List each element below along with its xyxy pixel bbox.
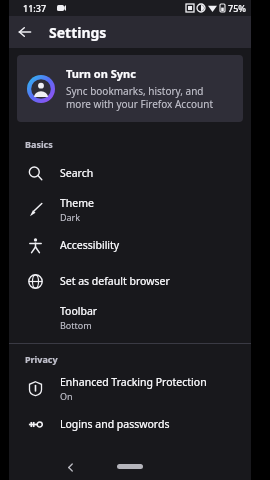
staticText: 75% bbox=[228, 2, 246, 14]
staticText: Sync bookmarks, history, and more with y… bbox=[66, 84, 213, 111]
staticText: Settings bbox=[49, 23, 107, 42]
staticText: Privacy bbox=[25, 353, 58, 365]
staticText: Search bbox=[60, 166, 94, 180]
staticText: 11:37 bbox=[23, 2, 47, 14]
staticText: Turn on Sync bbox=[66, 66, 136, 81]
staticText: Accessibility bbox=[60, 238, 120, 252]
button[interactable]: Toolbar bbox=[9, 299, 251, 335]
staticText: Toolbar bbox=[60, 304, 98, 318]
staticText: Set as default browser bbox=[60, 274, 170, 288]
button[interactable]: Logins and passwords bbox=[9, 406, 251, 442]
staticText: Logins and passwords bbox=[60, 417, 170, 431]
button[interactable]: Theme bbox=[9, 191, 251, 227]
staticText: Theme bbox=[60, 196, 94, 210]
staticText: On bbox=[60, 390, 73, 402]
staticText: Bottom bbox=[60, 319, 92, 331]
staticText: Dark bbox=[60, 211, 81, 223]
button[interactable]: Back bbox=[61, 458, 79, 476]
button[interactable]: Turn on Sync bbox=[17, 55, 243, 122]
button[interactable]: Back bbox=[9, 16, 41, 48]
staticText: Basics bbox=[25, 138, 53, 150]
button[interactable]: Home bbox=[117, 464, 143, 469]
button[interactable]: Enhanced Tracking Protection bbox=[9, 370, 251, 406]
staticText: Enhanced Tracking Protection bbox=[60, 375, 207, 389]
button[interactable]: Accessibility bbox=[9, 227, 251, 263]
button[interactable]: Search bbox=[9, 155, 251, 191]
button[interactable]: Set as default browser bbox=[9, 263, 251, 299]
